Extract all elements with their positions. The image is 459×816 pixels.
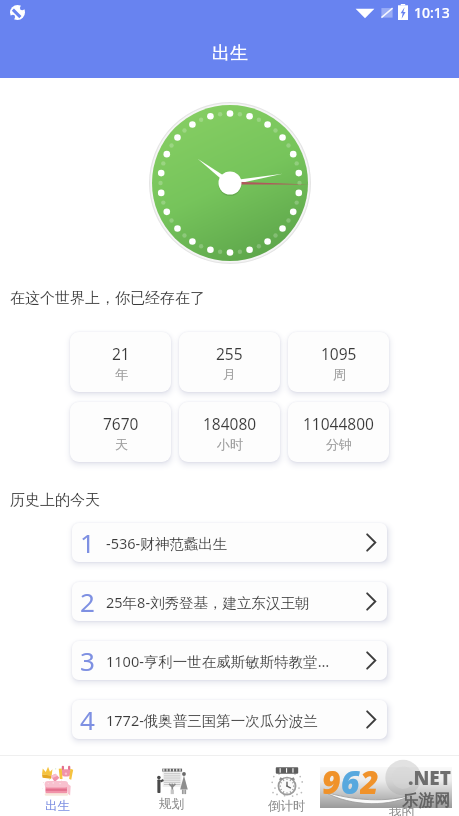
staticText: 6 bbox=[341, 760, 360, 801]
staticText: 10:13 bbox=[414, 3, 450, 22]
button[interactable]: 1095 bbox=[288, 332, 389, 392]
button[interactable]: 255 bbox=[179, 332, 280, 392]
button[interactable]: 7670 bbox=[70, 402, 171, 462]
button[interactable]: 1 bbox=[72, 523, 387, 562]
staticText: 天 bbox=[115, 436, 128, 452]
button[interactable]: 21 bbox=[70, 332, 171, 392]
staticText: 9 bbox=[322, 760, 341, 801]
staticText: 我的 bbox=[389, 804, 414, 816]
staticText: 月 bbox=[223, 366, 236, 382]
staticText: 乐游网 bbox=[402, 791, 450, 811]
button[interactable]: 4 bbox=[72, 700, 387, 739]
staticText: 1772-俄奥普三国第一次瓜分波兰 bbox=[106, 710, 365, 730]
staticText: 倒计时 bbox=[268, 798, 306, 814]
staticText: 21 bbox=[112, 343, 130, 364]
button[interactable]: 11044800 bbox=[288, 402, 389, 462]
staticText: 年 bbox=[115, 366, 128, 382]
button[interactable]: 规划 bbox=[114, 756, 229, 816]
staticText: 255 bbox=[216, 343, 243, 364]
staticText: 11044800 bbox=[303, 413, 374, 434]
staticText: 4 bbox=[80, 702, 95, 737]
staticText: 小时 bbox=[217, 436, 243, 452]
staticText: 历史上的今天 bbox=[10, 491, 100, 510]
button[interactable]: 倒计时 bbox=[229, 756, 344, 816]
staticText: 1 bbox=[80, 525, 95, 560]
staticText: 2 bbox=[80, 584, 95, 619]
staticText: 184080 bbox=[203, 413, 257, 434]
button[interactable]: 2 bbox=[72, 582, 387, 621]
staticText: 周 bbox=[333, 366, 346, 382]
staticText: .NET bbox=[408, 765, 451, 791]
button[interactable]: 出生 bbox=[0, 756, 114, 816]
staticText: 出生 bbox=[212, 42, 248, 65]
staticText: 1100-亨利一世在威斯敏斯特教堂… bbox=[106, 651, 365, 671]
staticText: 25年8-刘秀登基，建立东汉王朝 bbox=[106, 592, 365, 612]
staticText: -536-财神范蠡出生 bbox=[106, 533, 365, 553]
staticText: 在这个世界上，你已经存在了 bbox=[10, 289, 205, 308]
staticText: 分钟 bbox=[326, 436, 352, 452]
staticText: 7670 bbox=[103, 413, 139, 434]
button[interactable]: 我的 bbox=[344, 756, 459, 816]
staticText: 出生 bbox=[45, 798, 70, 814]
button[interactable]: 184080 bbox=[179, 402, 280, 462]
staticText: 1095 bbox=[321, 343, 357, 364]
staticText: 2 bbox=[360, 760, 379, 801]
button[interactable]: 3 bbox=[72, 641, 387, 680]
staticText: 3 bbox=[80, 643, 95, 678]
staticText: 规划 bbox=[159, 796, 184, 812]
